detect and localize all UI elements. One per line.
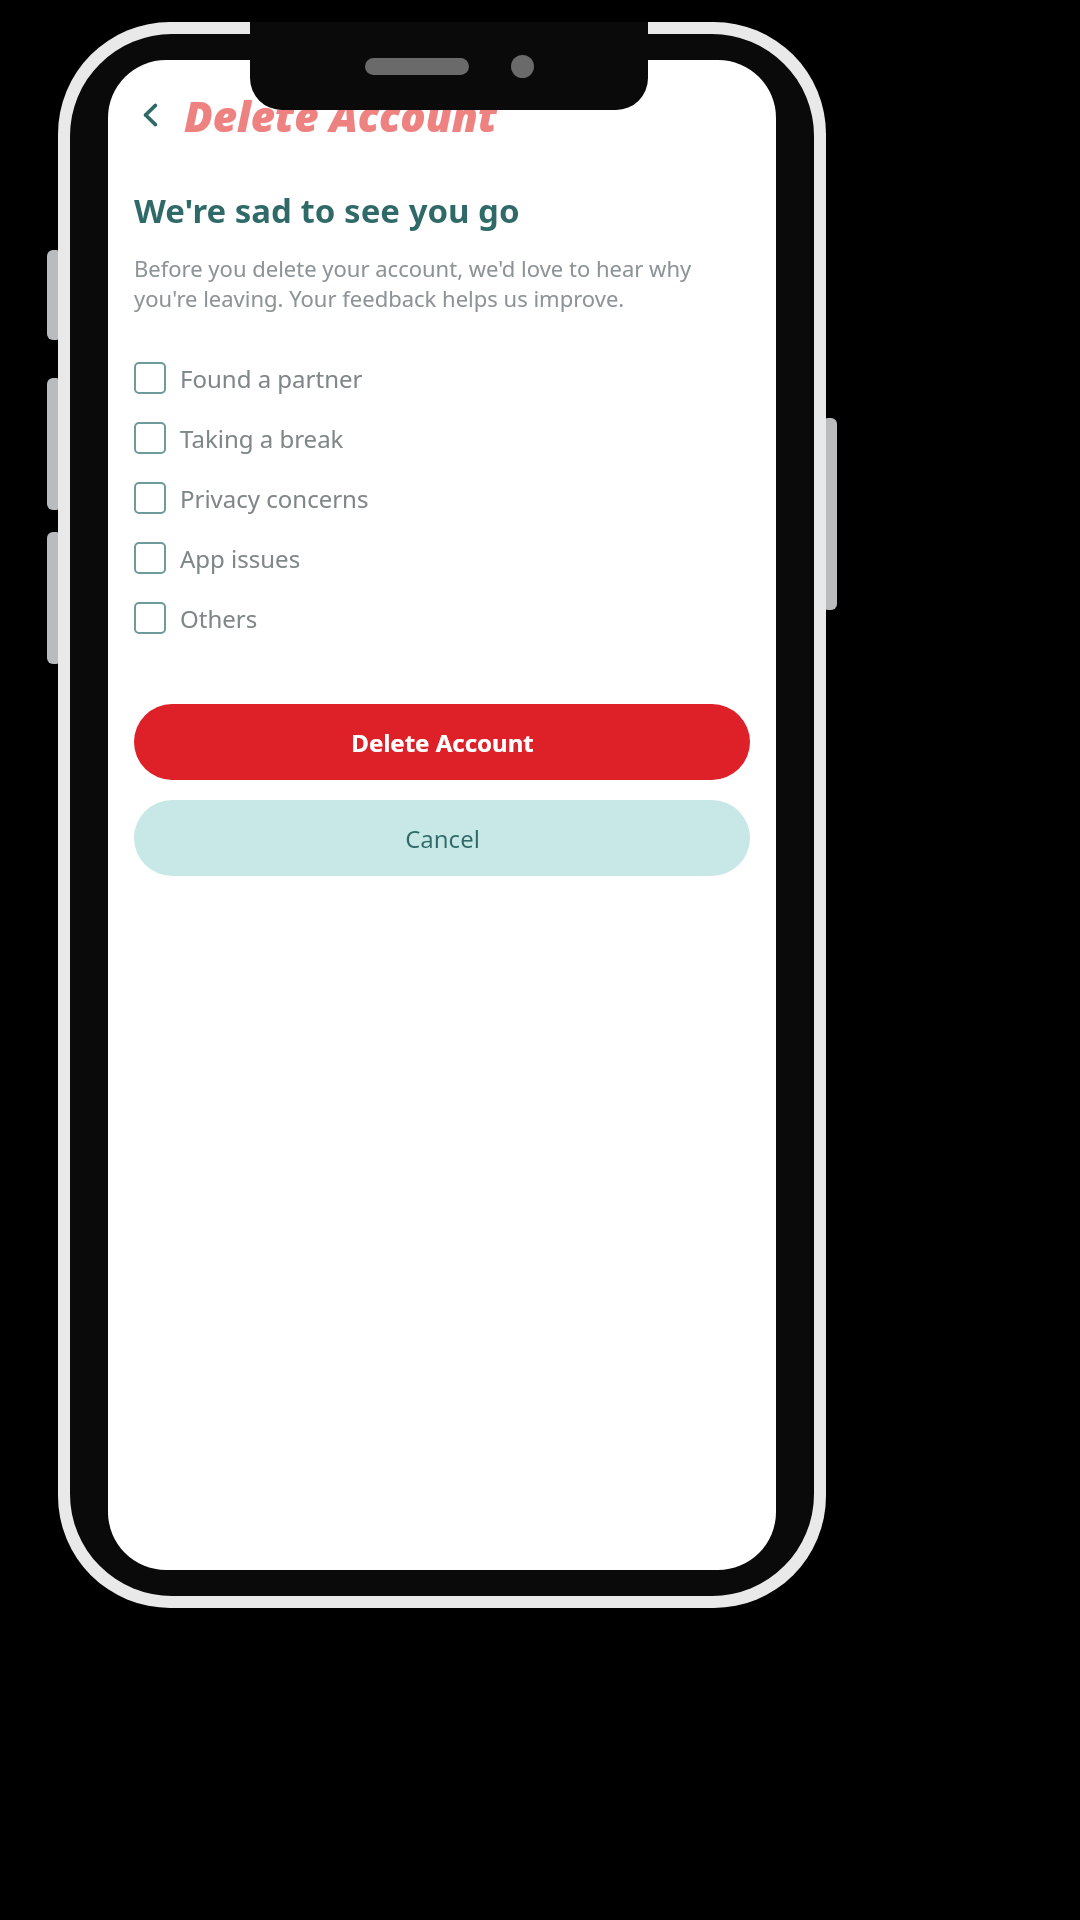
staticText: Before you delete your account, we'd lov… bbox=[134, 253, 756, 314]
staticText: Privacy concerns bbox=[180, 482, 369, 515]
staticText: Taking a break bbox=[180, 422, 344, 455]
button[interactable]: Cancel bbox=[134, 800, 750, 876]
staticText: App issues bbox=[180, 542, 301, 575]
staticText: We're sad to see you go bbox=[134, 188, 520, 233]
staticText: Others bbox=[180, 602, 258, 635]
button[interactable]: Others bbox=[108, 588, 776, 648]
staticText: Delete Account bbox=[184, 87, 498, 144]
staticText: Delete Account bbox=[351, 726, 534, 759]
button[interactable]: Back bbox=[122, 86, 180, 144]
button[interactable]: Taking a break bbox=[108, 408, 776, 468]
staticText: Found a partner bbox=[180, 362, 363, 395]
staticText: Cancel bbox=[405, 822, 480, 855]
button[interactable]: App issues bbox=[108, 528, 776, 588]
button[interactable]: Privacy concerns bbox=[108, 468, 776, 528]
button[interactable]: Found a partner bbox=[108, 348, 776, 408]
button[interactable]: Delete Account bbox=[134, 704, 750, 780]
